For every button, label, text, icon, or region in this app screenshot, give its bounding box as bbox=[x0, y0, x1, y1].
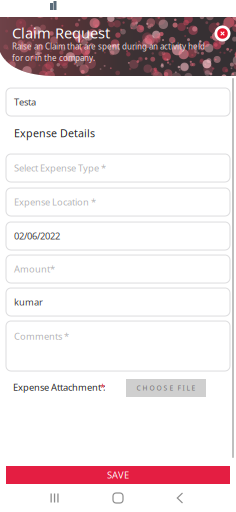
button[interactable]: Back bbox=[160, 484, 200, 512]
staticText: Expense Details bbox=[14, 126, 95, 140]
staticText: 02/06/2022 bbox=[14, 230, 60, 242]
staticText: kumar bbox=[14, 296, 43, 308]
staticText: C H O O S E F I L E bbox=[136, 384, 195, 392]
staticText: Expense Attachment : bbox=[13, 381, 106, 393]
staticText: Expense Location * bbox=[14, 196, 96, 208]
staticText: Comments * bbox=[14, 330, 69, 342]
button[interactable]: Recents bbox=[35, 484, 75, 512]
staticText: Amount* bbox=[14, 263, 55, 275]
staticText: Claim Request bbox=[12, 23, 110, 42]
staticText: Testa bbox=[14, 96, 36, 108]
button[interactable]: Close bbox=[211, 22, 233, 44]
staticText: * bbox=[100, 381, 105, 393]
button[interactable]: SAVE bbox=[6, 466, 230, 484]
button[interactable]: C H O O S E F I L E bbox=[126, 379, 206, 397]
staticText: SAVE bbox=[107, 469, 129, 481]
staticText: Raise an Claim that are spent during an … bbox=[12, 41, 205, 63]
button[interactable]: Home bbox=[98, 484, 138, 512]
staticText: Select Expense Type * bbox=[14, 162, 106, 174]
